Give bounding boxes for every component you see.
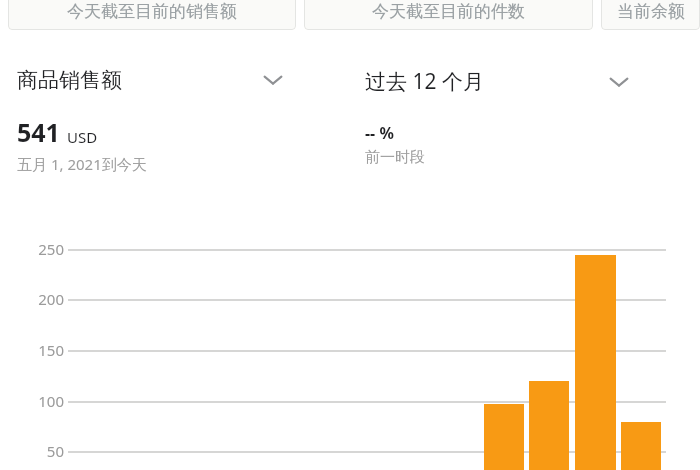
- button[interactable]: 今天截至目前的销售额: [8, 0, 296, 30]
- button[interactable]: 当前余额: [601, 0, 700, 30]
- staticText: 541: [17, 115, 60, 149]
- button[interactable]: 今天截至目前的件数: [304, 0, 593, 30]
- staticText: 50: [46, 441, 64, 461]
- staticText: 今天截至目前的件数: [372, 1, 525, 22]
- staticText: -- %: [365, 122, 394, 144]
- staticText: 过去 12 个月: [365, 67, 484, 96]
- staticText: USD: [67, 127, 98, 147]
- button[interactable]: 展开商品销售额选项: [259, 68, 287, 92]
- staticText: 商品销售额: [17, 67, 122, 93]
- staticText: 250: [38, 239, 64, 259]
- staticText: 200: [38, 289, 64, 309]
- staticText: 150: [38, 340, 64, 360]
- staticText: 前一时段: [365, 148, 425, 167]
- button[interactable]: 商品销售额: [17, 67, 287, 93]
- staticText: 今天截至目前的销售额: [67, 1, 237, 22]
- button[interactable]: 过去 12 个月: [365, 67, 633, 96]
- staticText: 当前余额: [617, 1, 685, 22]
- button[interactable]: 展开时间范围选项: [605, 70, 633, 94]
- staticText: 100: [38, 391, 64, 411]
- staticText: 五月 1, 2021到今天: [17, 154, 147, 174]
